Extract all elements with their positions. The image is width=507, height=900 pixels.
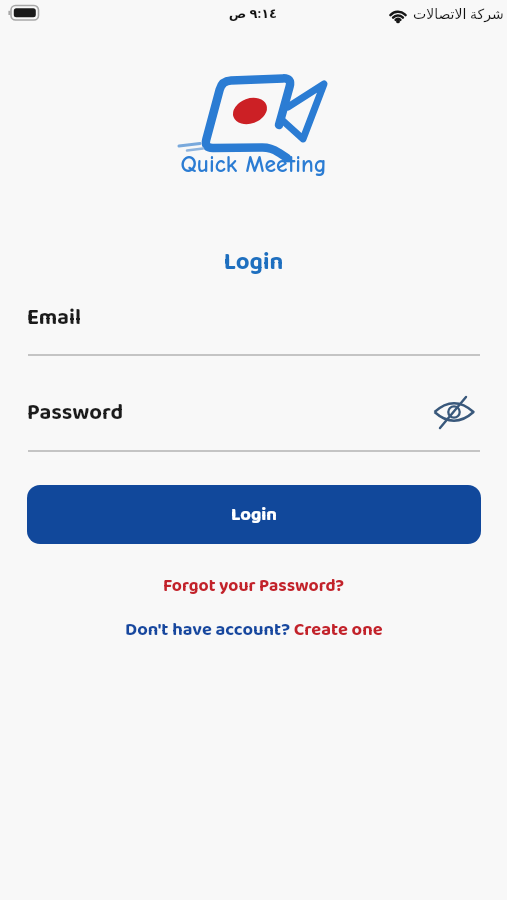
staticText: Login <box>0 243 507 281</box>
staticText: Forgot your Password? <box>163 572 345 600</box>
staticText: ٩:١٤ ص <box>228 4 277 22</box>
button[interactable]: Login <box>27 485 481 544</box>
staticText: Don't have account? Create one <box>125 615 383 644</box>
staticText: شركة الاتصالات <box>413 4 504 23</box>
staticText: Quick Meeting <box>0 151 507 178</box>
button[interactable]: Don't have account? Create one <box>125 615 383 644</box>
button[interactable]: Forgot your Password? <box>163 572 345 600</box>
staticText: Login <box>231 500 277 530</box>
staticText: Email <box>27 300 82 335</box>
staticText: Password <box>27 395 124 430</box>
